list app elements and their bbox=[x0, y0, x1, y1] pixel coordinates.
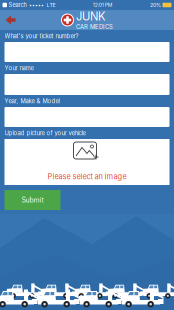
staticText: 12:01 PM bbox=[93, 2, 113, 8]
staticText: LTE bbox=[46, 2, 55, 8]
staticText: Please select an image bbox=[47, 172, 126, 181]
staticText: What's your ticket number? bbox=[4, 32, 78, 40]
button[interactable]: Back bbox=[0, 10, 28, 30]
staticText: JUNK bbox=[76, 10, 106, 23]
staticText: Upload picture of your vehicle bbox=[4, 129, 85, 137]
staticText: Search bbox=[8, 2, 26, 8]
button[interactable] bbox=[4, 74, 169, 95]
button[interactable] bbox=[4, 107, 169, 127]
button[interactable]: Submit bbox=[4, 190, 60, 210]
staticText: 20% bbox=[150, 2, 161, 8]
staticText: Year, Make & Model bbox=[4, 97, 59, 105]
button[interactable] bbox=[4, 42, 169, 62]
staticText: CAR MEDICS bbox=[76, 23, 113, 30]
staticText: ••••• bbox=[29, 2, 44, 8]
button[interactable]: Please select an image bbox=[4, 139, 169, 185]
staticText: Your name bbox=[4, 64, 33, 72]
staticText: Submit bbox=[21, 196, 43, 204]
